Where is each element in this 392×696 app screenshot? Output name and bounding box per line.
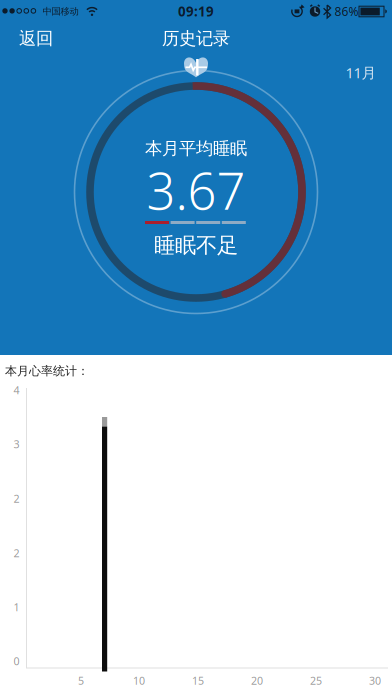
staticText: 15: [192, 673, 204, 688]
staticText: 0: [13, 654, 19, 668]
staticText: 1: [13, 600, 19, 614]
button[interactable]: 返回: [6, 23, 66, 53]
staticText: 4: [13, 383, 19, 397]
staticText: 历史记录: [162, 28, 230, 49]
staticText: 3: [13, 437, 19, 451]
staticText: 本月平均睡眠: [145, 138, 247, 159]
staticText: 11月: [345, 63, 376, 82]
staticText: 09:19: [178, 2, 214, 20]
staticText: 2: [13, 491, 19, 506]
staticText: 3.67: [146, 156, 245, 224]
staticText: 中国移动: [42, 6, 78, 17]
staticText: 返回: [19, 28, 53, 49]
staticText: 10: [133, 673, 145, 688]
staticText: 86%: [334, 3, 358, 19]
staticText: 本月心率统计：: [5, 364, 89, 378]
staticText: 25: [310, 673, 322, 688]
staticText: 20: [251, 673, 263, 688]
staticText: 30: [369, 673, 381, 688]
staticText: 2: [13, 546, 19, 560]
staticText: 睡眠不足: [154, 232, 238, 259]
staticText: 5: [78, 673, 84, 688]
